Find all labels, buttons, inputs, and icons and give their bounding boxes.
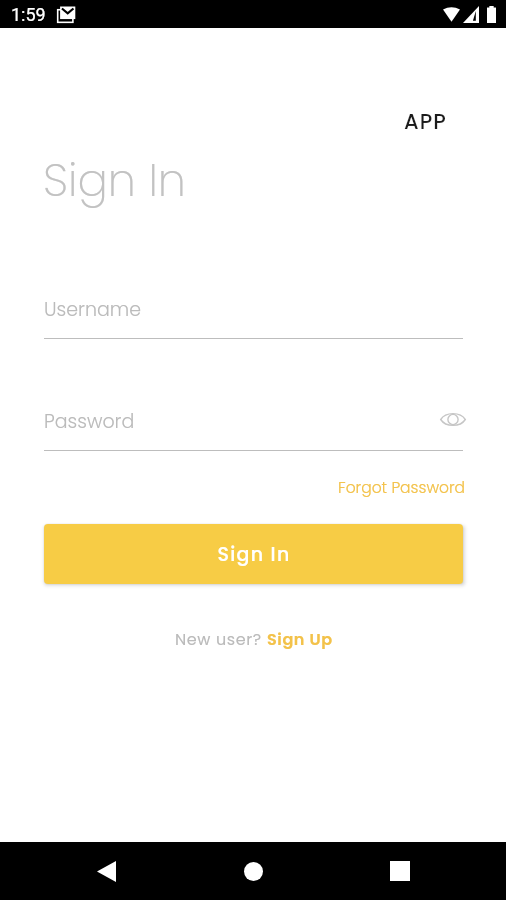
staticText: Sign Up [267,628,333,650]
staticText: APP [404,107,447,136]
other: New mail [57,6,76,23]
staticText: Username [44,296,142,323]
button[interactable]: Back [88,853,124,889]
staticText: Sign In [43,149,186,212]
button[interactable]: APP [404,107,447,136]
button[interactable]: Password [44,408,433,435]
button[interactable]: Username [44,296,463,339]
staticText: New user? [175,628,267,650]
button[interactable]: Sign Up [267,628,333,650]
staticText: Forgot Password [338,477,466,499]
button[interactable]: Recent apps [382,853,418,889]
button[interactable]: Home [235,853,271,889]
button[interactable]: Forgot Password [338,477,466,499]
staticText: Sign In [217,541,291,568]
button[interactable]: Sign In [44,524,463,584]
button[interactable]: Show password [438,406,468,432]
staticText: 1:59 [11,4,46,25]
